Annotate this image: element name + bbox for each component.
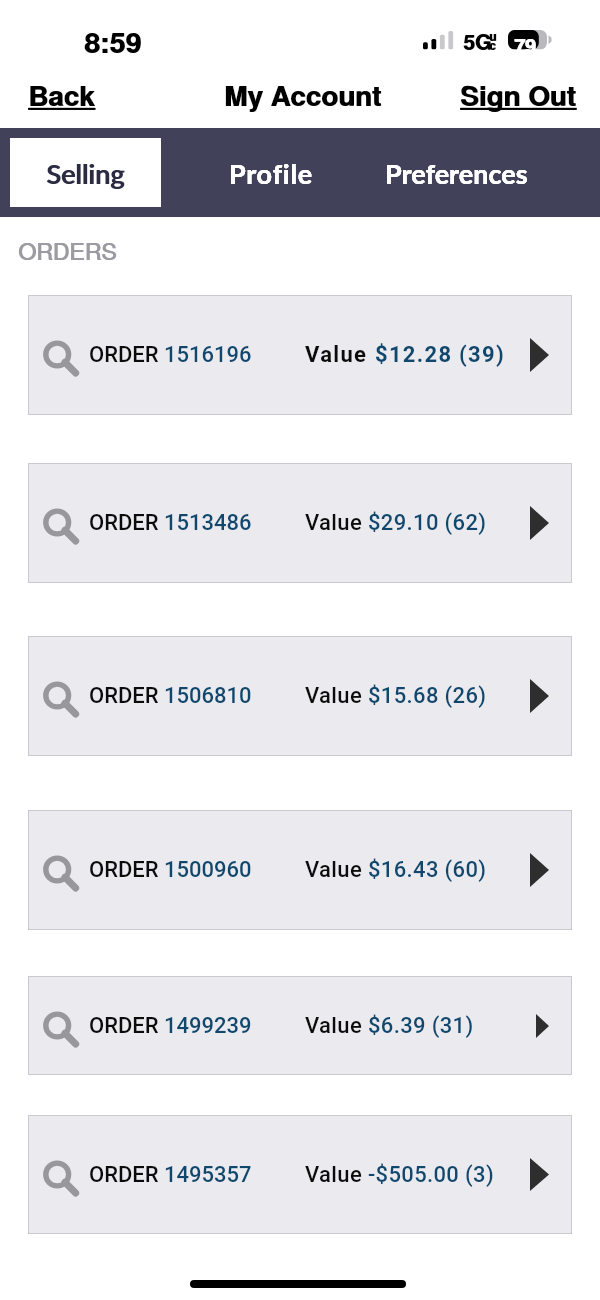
staticText: 8:59 [84, 21, 142, 62]
staticText: Preferences [385, 157, 528, 189]
staticText: Selling [46, 157, 125, 189]
button[interactable]: Selling [10, 138, 161, 207]
button[interactable]: ORDER [29, 637, 571, 755]
staticText: ORDER [89, 683, 164, 709]
staticText: 5G [463, 26, 492, 56]
staticText: c [490, 37, 497, 53]
button[interactable]: Sign Out [460, 75, 576, 115]
staticText: $29.10 (62) [368, 510, 487, 536]
staticText: Preferences [385, 157, 528, 189]
staticText: u [490, 28, 498, 44]
button[interactable]: ORDER [29, 977, 571, 1074]
staticText: 5G [464, 26, 493, 56]
staticText: u [489, 28, 497, 44]
staticText: My Account [225, 75, 383, 115]
button[interactable]: Open order [525, 501, 554, 545]
staticText: c [489, 37, 496, 53]
staticText: 1513486 [164, 510, 252, 536]
staticText: Sign Out [460, 75, 576, 115]
staticText: 1499239 [164, 1013, 252, 1039]
staticText: $16.43 (60) [368, 857, 487, 883]
staticText: 1516196 [164, 342, 252, 368]
staticText: 79 [514, 31, 536, 59]
button[interactable]: Open order [531, 1009, 554, 1043]
staticText: ORDERS [18, 234, 117, 267]
button[interactable]: ORDER [29, 1116, 571, 1233]
button[interactable]: ORDER [29, 811, 571, 929]
staticText: Back [28, 75, 95, 115]
staticText: 1500960 [164, 857, 252, 883]
button[interactable]: Open order [525, 848, 554, 892]
staticText: ORDER [89, 1013, 164, 1039]
staticText: Profile [229, 157, 313, 189]
button[interactable]: ORDER [29, 296, 571, 414]
staticText: ORDERS [19, 234, 118, 267]
staticText: $12.28 (39) [375, 342, 506, 368]
staticText: Value [305, 683, 368, 709]
staticText: Sign Out [461, 75, 577, 115]
button[interactable]: Profile [196, 138, 346, 207]
staticText: Back [29, 75, 96, 115]
button[interactable]: My Account [224, 75, 382, 115]
staticText: Value [305, 510, 368, 536]
staticText: ORDER [89, 510, 164, 536]
staticText: ORDER [89, 342, 164, 368]
staticText: ORDER [89, 857, 164, 883]
staticText: Profile [229, 157, 313, 189]
button[interactable]: ORDER [29, 464, 571, 582]
button[interactable]: Open order [525, 674, 554, 718]
button[interactable]: Preferences [370, 138, 542, 207]
staticText: Value [305, 1013, 368, 1039]
staticText: 1495357 [164, 1162, 252, 1188]
button[interactable]: Open order [525, 1153, 554, 1196]
staticText: Selling [47, 157, 126, 189]
staticText: 8:59 [85, 21, 143, 62]
button[interactable]: Open order [525, 333, 554, 377]
staticText: 79 [515, 31, 537, 59]
staticText: 1506810 [164, 683, 252, 709]
staticText: Value [305, 1162, 368, 1188]
staticText: My Account [224, 75, 382, 115]
staticText: ORDER [89, 1162, 164, 1188]
button[interactable]: Back [28, 75, 95, 115]
staticText: -$505.00 (3) [368, 1162, 495, 1188]
staticText: Value [305, 342, 375, 368]
staticText: $15.68 (26) [368, 683, 487, 709]
staticText: Value [305, 857, 368, 883]
staticText: $6.39 (31) [368, 1013, 474, 1039]
